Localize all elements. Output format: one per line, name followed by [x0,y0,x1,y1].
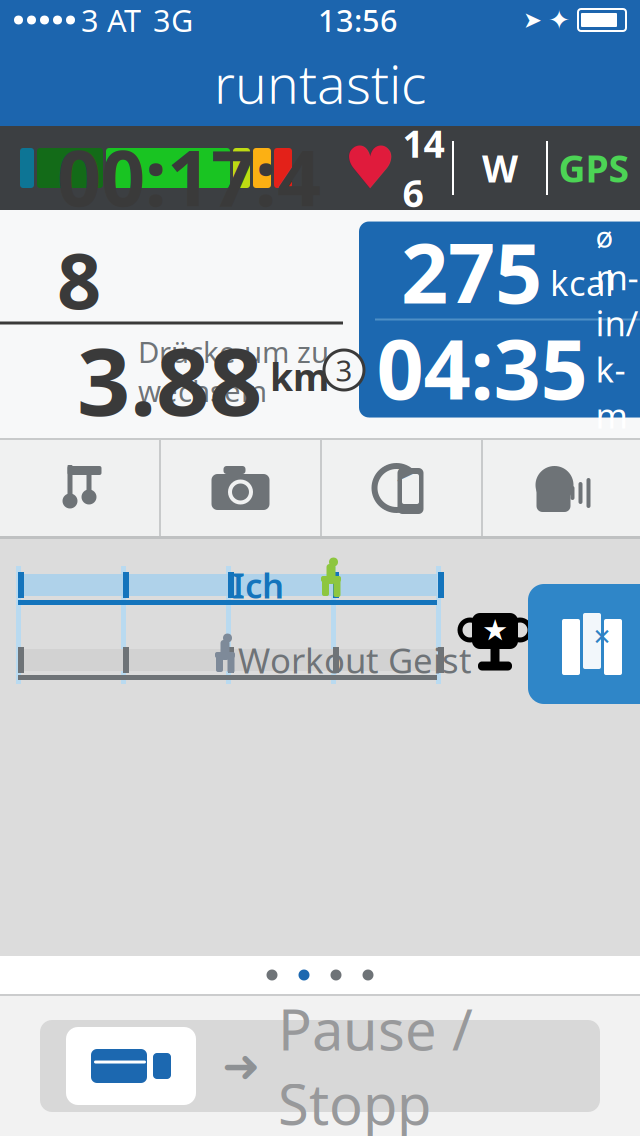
button[interactable]: W [454,133,546,203]
button[interactable]: Camera [161,440,320,536]
staticText: 04:35 [376,313,587,422]
button[interactable]: 00:17:48 [0,213,343,321]
button[interactable]: Map [528,584,640,704]
staticText: ➤ [523,7,542,33]
staticText: 3.88 [77,317,262,441]
staticText: km [270,352,329,401]
staticText: runta [214,48,346,118]
staticText: Drücke um zu wechseln [138,332,329,410]
button[interactable]: 275 [359,224,640,318]
staticText: ➜ [222,1040,260,1092]
staticText: 00:17:48 [57,125,321,330]
staticText: 275 [401,217,542,326]
staticText: min/km [595,254,638,438]
staticText: ➤ [394,459,414,487]
staticText: s [346,48,371,118]
button[interactable]: ♥ [336,133,452,203]
button[interactable]: 3.88 [0,324,343,434]
button[interactable]: Rotate screen [322,440,481,536]
button[interactable]: 04:35 [359,320,640,414]
staticText: 13:56 [318,0,398,40]
staticText: ✕ [592,624,611,650]
staticText: kcal [550,259,614,305]
button[interactable]: Achievements [462,584,528,704]
staticText: 3G [153,0,193,40]
button[interactable]: Voice coach [483,440,640,536]
staticText: Pause / Stopp [278,992,473,1136]
staticText: ★ [482,613,508,647]
staticText: 3 [335,350,352,389]
button[interactable]: Music [0,440,159,536]
button[interactable]: GPS [548,133,640,203]
staticText: 3 AT [81,0,141,40]
button[interactable]: ➜ [40,1020,600,1112]
staticText: W [482,143,518,193]
staticText: GPS [558,143,629,193]
staticText: 146 [402,118,444,218]
staticText: ✦ [548,5,570,35]
staticText: ø [595,217,613,256]
staticText: ♥ [343,135,396,201]
staticText: Workout Geist [238,637,472,683]
staticText: tic [371,48,426,118]
staticText: Ich [232,562,284,608]
